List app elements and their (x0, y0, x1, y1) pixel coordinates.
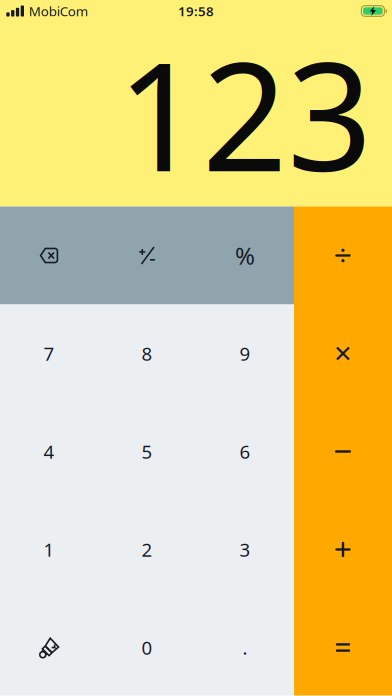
staticText: 4 (43, 439, 54, 464)
staticText: MobiCom (29, 2, 88, 20)
button[interactable]: 3 (196, 500, 294, 598)
button[interactable]: 0 (98, 598, 196, 696)
staticText: % (235, 240, 255, 271)
staticText: 3 (239, 537, 250, 562)
staticText: 123 (117, 14, 372, 212)
button[interactable]: 1 (0, 500, 98, 598)
staticText: 5 (141, 439, 152, 464)
button[interactable]: Percent (196, 206, 294, 304)
button[interactable]: Subtract (294, 402, 392, 500)
staticText: 9 (239, 341, 250, 366)
staticText: 0 (141, 635, 152, 660)
button[interactable]: 2 (98, 500, 196, 598)
button[interactable]: Theme (0, 598, 98, 696)
button[interactable]: Delete (0, 206, 98, 304)
button[interactable]: Plus minus (98, 206, 196, 304)
button[interactable]: 8 (98, 304, 196, 402)
button[interactable]: 4 (0, 402, 98, 500)
button[interactable]: Divide (294, 206, 392, 304)
button[interactable]: 6 (196, 402, 294, 500)
button[interactable]: Add (294, 500, 392, 598)
button[interactable]: 7 (0, 304, 98, 402)
staticText: . (242, 635, 247, 660)
button[interactable]: Multiply (294, 304, 392, 402)
staticText: 19:58 (178, 2, 214, 20)
button[interactable]: Equals (294, 598, 392, 696)
button[interactable]: 9 (196, 304, 294, 402)
button[interactable]: Decimal point (196, 598, 294, 696)
staticText: 8 (141, 341, 152, 366)
staticText: 1 (43, 537, 54, 562)
staticText: 7 (43, 341, 54, 366)
staticText: 6 (239, 439, 250, 464)
staticText: 2 (141, 537, 152, 562)
button[interactable]: 5 (98, 402, 196, 500)
